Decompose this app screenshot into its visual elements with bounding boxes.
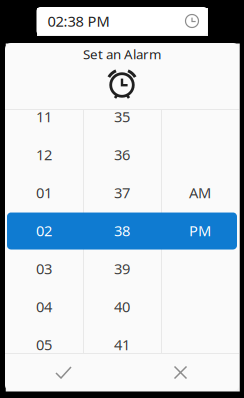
staticText: 04: [36, 297, 52, 316]
staticText: Set an Alarm: [83, 45, 161, 63]
button[interactable]: 36: [83, 135, 161, 173]
button[interactable]: 02:38 PM: [36, 7, 207, 35]
button[interactable]: 38: [83, 211, 161, 249]
button[interactable]: AM: [161, 173, 239, 211]
staticText: 40: [114, 297, 130, 316]
button[interactable]: 02: [5, 211, 83, 249]
button[interactable]: 01: [5, 173, 83, 211]
staticText: AM: [189, 183, 211, 202]
button[interactable]: 37: [83, 173, 161, 211]
button[interactable]: PM: [161, 211, 239, 249]
staticText: 01: [36, 183, 52, 202]
staticText: 37: [114, 183, 130, 202]
button[interactable]: 40: [83, 287, 161, 325]
button[interactable]: 05: [5, 325, 83, 363]
staticText: 02:38 PM: [47, 11, 109, 31]
staticText: 05: [36, 335, 52, 354]
button[interactable]: 11: [5, 97, 83, 135]
staticText: 11: [36, 107, 52, 126]
button[interactable]: 12: [5, 135, 83, 173]
button[interactable]: [161, 97, 239, 135]
staticText: 36: [114, 145, 130, 164]
staticText: PM: [189, 221, 211, 240]
button[interactable]: 35: [83, 97, 161, 135]
staticText: 39: [114, 259, 130, 278]
staticText: 41: [114, 335, 130, 354]
staticText: 03: [36, 259, 52, 278]
button[interactable]: 04: [5, 287, 83, 325]
staticText: 35: [114, 107, 130, 126]
button[interactable]: 41: [83, 325, 161, 363]
staticText: 02: [36, 221, 52, 240]
button[interactable]: Cancel: [122, 354, 239, 391]
button[interactable]: Confirm: [5, 354, 122, 391]
button[interactable]: 39: [83, 249, 161, 287]
button[interactable]: [161, 325, 239, 363]
button[interactable]: 03: [5, 249, 83, 287]
staticText: 12: [36, 145, 52, 164]
staticText: 38: [114, 221, 130, 240]
